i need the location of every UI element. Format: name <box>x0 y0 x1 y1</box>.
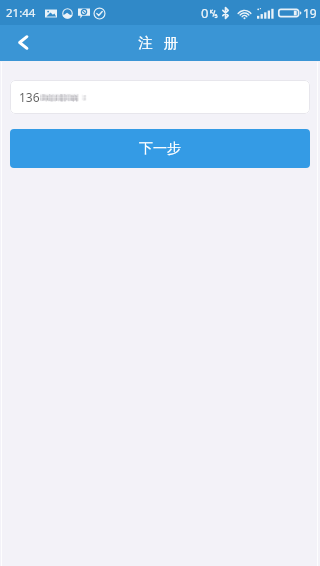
staticText: 136 <box>19 89 40 105</box>
button[interactable]: 下一步 <box>10 129 310 168</box>
staticText: 19 <box>303 5 317 21</box>
staticText: 下一步 <box>139 140 181 158</box>
button[interactable]: 136 <box>10 80 310 114</box>
staticText: 注 册 <box>138 32 179 52</box>
staticText: 0 <box>201 4 209 22</box>
button[interactable]: Back <box>6 26 40 60</box>
staticText: 21:44 <box>6 5 36 21</box>
